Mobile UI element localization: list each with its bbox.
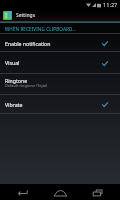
button[interactable]: Settings [0,9,120,21]
staticText: Ringtone [5,77,28,84]
button[interactable]: Visual [0,52,120,74]
button[interactable]: Vibrate [0,95,120,114]
staticText: Settings [16,12,36,19]
button[interactable]: Enable notification [0,34,120,52]
button[interactable]: Ringtone [0,74,120,95]
button[interactable]: Recent apps [80,184,120,200]
staticText: Vibrate [5,101,23,108]
staticText: Default ringtone (Tejat) [5,83,48,88]
button[interactable]: Back [0,184,40,200]
button[interactable]: Home [40,184,80,200]
staticText: Enable notification [5,40,51,47]
staticText: Visual [5,59,20,66]
staticText: 11:27 [103,1,118,9]
staticText: WHEN RECEIVING CLIPBOARD… [5,26,76,32]
